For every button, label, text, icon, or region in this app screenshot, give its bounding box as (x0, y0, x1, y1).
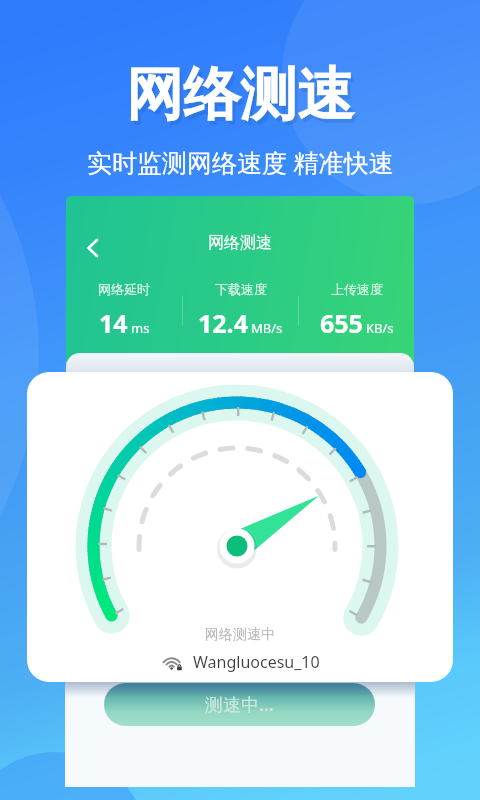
button[interactable]: Back (74, 231, 108, 265)
staticText: 网络测速 (126, 59, 354, 131)
staticText: 网络测速中 (205, 626, 275, 644)
staticText: 测速中... (205, 692, 274, 717)
staticText: 上传速度 (331, 281, 383, 297)
staticText: 655 (320, 306, 363, 340)
staticText: 实时监测网络速度 精准快速 (87, 145, 394, 179)
staticText: KB/s (366, 319, 394, 337)
staticText: 14 (99, 306, 128, 340)
button[interactable]: 测速中... (104, 683, 375, 726)
staticText: 网络延时 (98, 281, 150, 297)
staticText: 12.4 (198, 306, 248, 340)
staticText: 下载速度 (215, 281, 267, 297)
staticText: ms (131, 319, 150, 337)
staticText: MB/s (251, 319, 283, 337)
staticText: Wangluocesu_10 (193, 651, 320, 673)
staticText: 网络测速 (129, 63, 357, 135)
staticText: 网络测速 (208, 233, 272, 253)
